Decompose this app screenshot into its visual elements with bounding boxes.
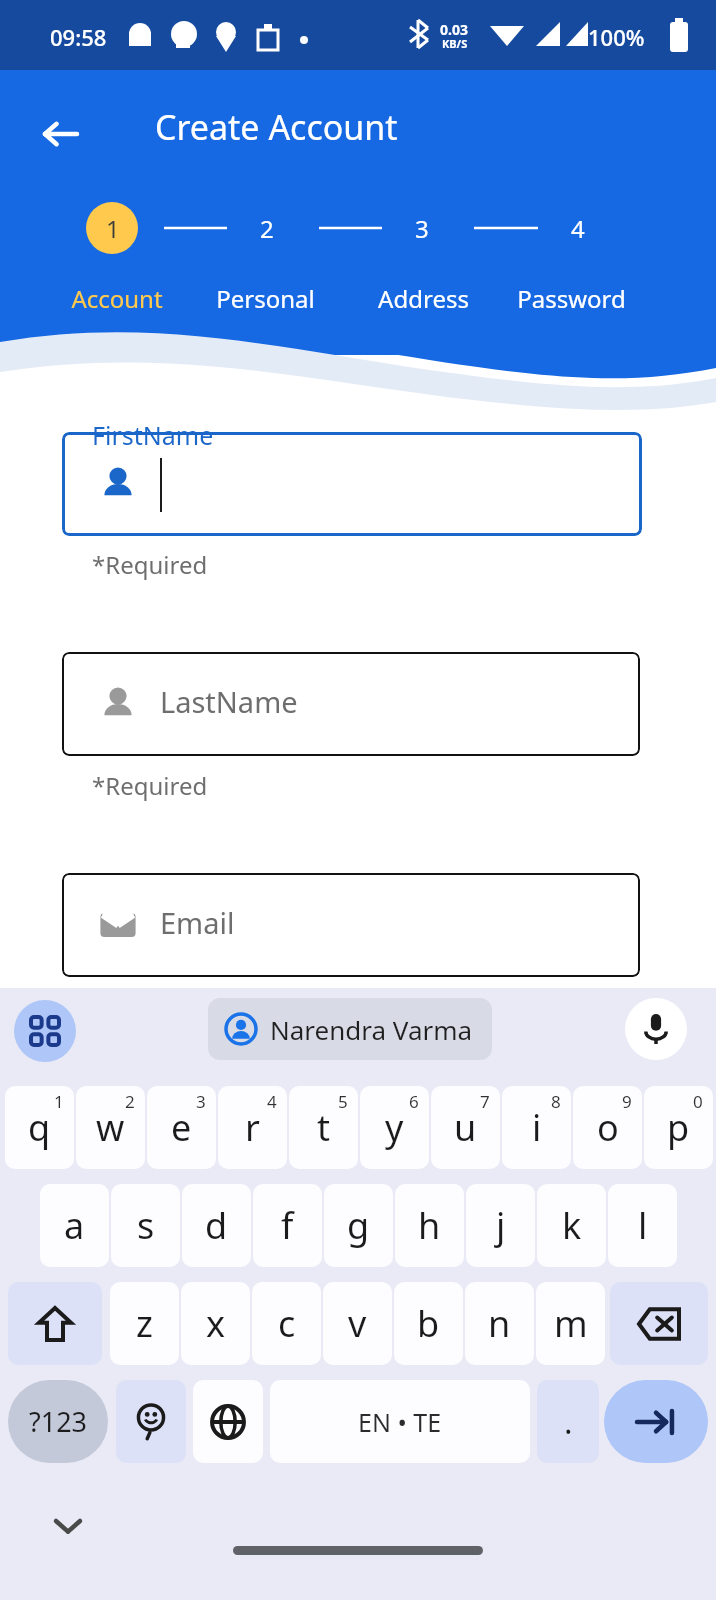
button[interactable]: Password — [516, 276, 626, 320]
staticText: 1 — [54, 1090, 64, 1113]
button[interactable]: r — [218, 1086, 287, 1169]
button[interactable]: Shift — [8, 1282, 102, 1365]
button[interactable]: j — [466, 1184, 535, 1267]
staticText: 2 — [260, 212, 274, 245]
staticText: u — [454, 1103, 477, 1152]
staticText: 9 — [622, 1090, 632, 1113]
button[interactable]: LastName — [62, 652, 640, 756]
button[interactable]: y — [360, 1086, 429, 1169]
staticText: d — [205, 1201, 228, 1250]
staticText: 0 — [693, 1090, 703, 1113]
button[interactable]: d — [182, 1184, 251, 1267]
staticText: y — [385, 1103, 404, 1152]
button[interactable]: w — [76, 1086, 145, 1169]
button[interactable]: h — [395, 1184, 464, 1267]
staticText: 09:58 — [50, 22, 107, 52]
staticText: . — [564, 1400, 573, 1444]
button[interactable]: s — [111, 1184, 180, 1267]
button[interactable]: Back — [28, 102, 92, 166]
staticText: c — [278, 1299, 296, 1348]
staticText: a — [64, 1201, 85, 1250]
staticText: x — [206, 1299, 226, 1348]
staticText: Password — [517, 282, 626, 315]
staticText: v — [348, 1299, 367, 1348]
staticText: r — [245, 1103, 260, 1152]
staticText: Account — [71, 282, 163, 315]
button[interactable]: ?123 — [8, 1380, 108, 1463]
staticText: 2 — [125, 1090, 135, 1113]
staticText: o — [597, 1103, 619, 1152]
staticText: Narendra Varma — [270, 1012, 473, 1047]
staticText: f — [281, 1201, 294, 1250]
button[interactable]: n — [465, 1282, 534, 1365]
staticText: 4 — [571, 212, 585, 245]
staticText: q — [28, 1103, 51, 1152]
staticText: h — [418, 1201, 441, 1250]
staticText: 6 — [409, 1090, 419, 1113]
button[interactable]: p — [644, 1086, 713, 1169]
button[interactable]: b — [394, 1282, 463, 1365]
staticText: l — [638, 1201, 648, 1250]
staticText: 3 — [415, 212, 429, 245]
staticText: 100% — [588, 22, 645, 52]
button[interactable]: t — [289, 1086, 358, 1169]
button[interactable]: x — [181, 1282, 250, 1365]
button[interactable]: e — [147, 1086, 216, 1169]
staticText: p — [667, 1103, 690, 1152]
staticText: t — [317, 1103, 330, 1152]
staticText: e — [171, 1103, 192, 1152]
button[interactable]: c — [252, 1282, 321, 1365]
button[interactable]: Email — [62, 873, 640, 977]
button[interactable]: Keyboard options — [14, 1000, 76, 1062]
staticText: w — [96, 1103, 125, 1152]
staticText: Email — [160, 903, 235, 942]
staticText: i — [532, 1103, 542, 1152]
button[interactable]: Hide keyboard — [40, 1498, 96, 1554]
staticText: 0.03 — [440, 20, 468, 39]
staticText: ?123 — [29, 1403, 88, 1440]
button[interactable]: Change language — [193, 1380, 263, 1463]
staticText: FirstName — [92, 418, 214, 452]
button[interactable]: q — [5, 1086, 74, 1169]
button[interactable] — [62, 432, 642, 536]
button[interactable]: Next — [604, 1380, 708, 1463]
staticText: g — [347, 1201, 370, 1250]
button[interactable]: Backspace — [610, 1282, 708, 1365]
button[interactable]: EN • TE — [270, 1380, 530, 1463]
staticText: 5 — [338, 1090, 348, 1113]
button[interactable]: . — [537, 1380, 599, 1463]
staticText: 3 — [196, 1090, 206, 1113]
button[interactable]: a — [40, 1184, 109, 1267]
button[interactable]: f — [253, 1184, 322, 1267]
staticText: z — [136, 1299, 153, 1348]
button[interactable]: v — [323, 1282, 392, 1365]
button[interactable]: k — [537, 1184, 606, 1267]
button[interactable]: l — [608, 1184, 677, 1267]
staticText: Personal — [216, 282, 315, 315]
staticText: 4 — [267, 1090, 277, 1113]
button[interactable]: u — [431, 1086, 500, 1169]
button[interactable]: o — [573, 1086, 642, 1169]
staticText: j — [496, 1201, 506, 1250]
staticText: k — [562, 1201, 582, 1250]
button[interactable]: Account — [62, 276, 172, 320]
button[interactable]: Personal — [210, 276, 320, 320]
staticText: b — [417, 1299, 440, 1348]
staticText: 1 — [106, 212, 120, 245]
button[interactable]: Narendra Varma — [208, 998, 492, 1060]
button[interactable]: z — [110, 1282, 179, 1365]
button[interactable]: g — [324, 1184, 393, 1267]
staticText: EN • TE — [358, 1405, 442, 1439]
staticText: s — [137, 1201, 155, 1250]
staticText: *Required — [92, 769, 208, 802]
button[interactable]: m — [536, 1282, 605, 1365]
button[interactable]: Voice input — [625, 998, 687, 1060]
staticText: n — [488, 1299, 511, 1348]
button[interactable]: Address — [368, 276, 478, 320]
staticText: Address — [378, 282, 469, 315]
staticText: KB/S — [442, 36, 468, 51]
button[interactable]: Emoji — [116, 1380, 186, 1463]
button[interactable]: i — [502, 1086, 571, 1169]
staticText: *Required — [92, 548, 208, 581]
staticText: m — [554, 1299, 588, 1348]
